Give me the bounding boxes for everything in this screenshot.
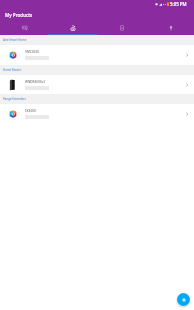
staticText: Home Router <box>3 68 22 72</box>
staticText: 5:05 PM <box>170 1 187 7</box>
button[interactable]: Add device <box>177 293 190 306</box>
staticText: Arlo Smart Home <box>3 38 27 42</box>
staticText: Range Extenders <box>3 97 26 101</box>
staticText: WNDR4500v3 <box>25 80 46 84</box>
button[interactable]: Devices <box>48 22 96 35</box>
button[interactable]: Messages <box>0 22 48 35</box>
button[interactable]: Cameras <box>96 22 145 35</box>
button[interactable]: WNDR4500v3 <box>0 75 194 94</box>
button[interactable]: Lights <box>145 22 194 35</box>
staticText: EX3000 <box>25 109 36 113</box>
button[interactable]: VMC3030 <box>0 45 194 65</box>
button[interactable]: EX3000 <box>0 104 194 124</box>
staticText: My Products <box>5 12 33 18</box>
staticText: VMC3030 <box>25 50 39 54</box>
